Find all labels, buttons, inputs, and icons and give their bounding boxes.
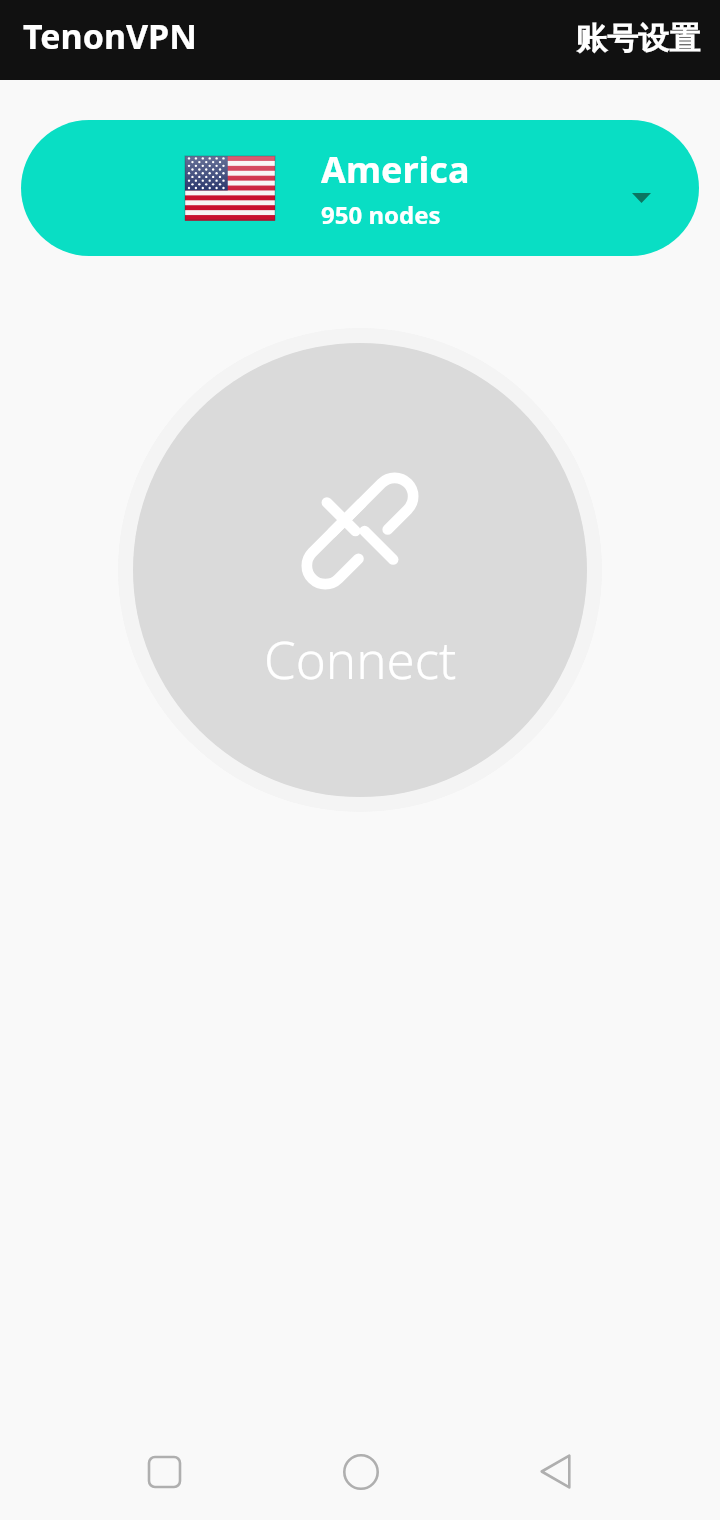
button[interactable]: Back	[507, 1423, 604, 1520]
staticText: America	[321, 145, 470, 194]
staticText: Connect	[264, 624, 457, 693]
button[interactable]: TenonVPN	[23, 13, 197, 59]
button[interactable]: Home	[312, 1423, 409, 1520]
button[interactable]: 账号设置	[576, 19, 700, 58]
button[interactable]: Connect	[133, 343, 587, 797]
button[interactable]: Recents	[116, 1423, 213, 1520]
button[interactable]: America	[21, 120, 699, 256]
staticText: 950 nodes	[321, 198, 441, 231]
